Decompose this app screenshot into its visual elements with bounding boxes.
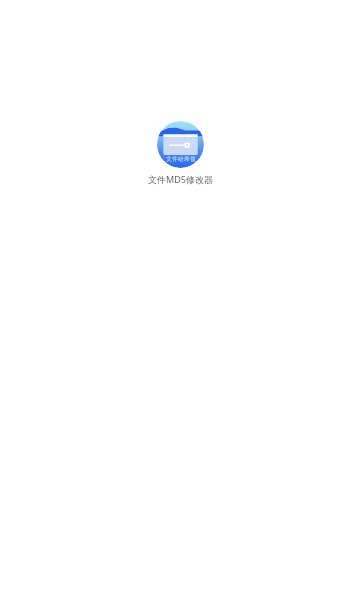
button[interactable]: 文件MD5修改器 (157, 121, 204, 168)
staticText: 文件哈希值 (166, 155, 196, 163)
staticText: 文件MD5修改器 (148, 173, 213, 185)
